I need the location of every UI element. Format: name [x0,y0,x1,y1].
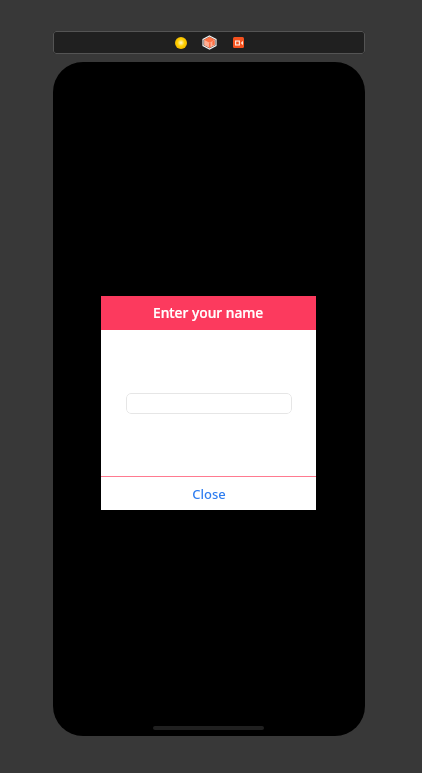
button[interactable]: Close [101,477,316,510]
button[interactable]: Screen record [228,32,249,53]
button[interactable]: Name input [126,393,292,414]
button[interactable]: Device [170,32,191,53]
staticText: Enter your name [153,303,264,322]
button[interactable]: Build [199,32,220,53]
staticText: Close [192,485,226,503]
